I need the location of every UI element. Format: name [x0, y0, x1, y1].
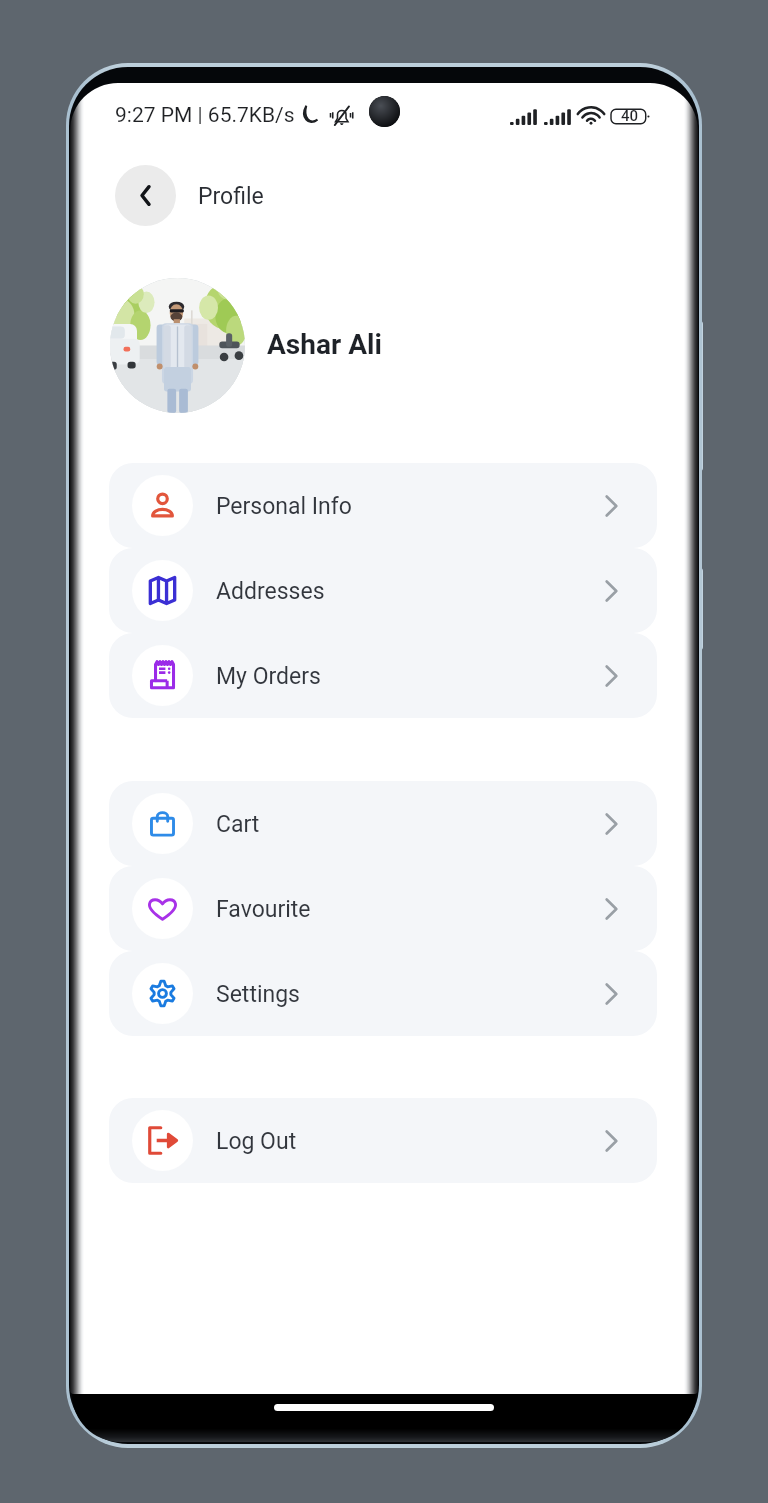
- staticText: 40: [621, 107, 639, 125]
- button[interactable]: Personal Info: [109, 463, 657, 548]
- button[interactable]: Back: [115, 165, 176, 226]
- button[interactable]: Addresses: [109, 548, 657, 633]
- staticText: My Orders: [216, 663, 321, 690]
- staticText: Personal Info: [216, 493, 352, 520]
- staticText: Cart: [216, 811, 260, 838]
- button[interactable]: My Orders: [109, 633, 657, 718]
- button[interactable]: Log Out: [109, 1098, 657, 1183]
- staticText: Log Out: [216, 1128, 297, 1155]
- staticText: Profile: [198, 183, 264, 210]
- staticText: Addresses: [216, 578, 325, 605]
- staticText: Favourite: [216, 896, 311, 923]
- button[interactable]: Favourite: [109, 866, 657, 951]
- staticText: 9:27 PM | 65.7KB/s: [115, 103, 295, 128]
- button[interactable]: Cart: [109, 781, 657, 866]
- staticText: Settings: [216, 981, 300, 1008]
- button[interactable]: Settings: [109, 951, 657, 1036]
- staticText: Ashar Ali: [267, 328, 382, 361]
